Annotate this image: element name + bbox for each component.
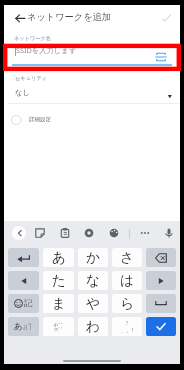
button[interactable]: は	[112, 271, 142, 290]
button[interactable]: 詳細設定	[8, 109, 100, 130]
button[interactable]: わ	[78, 317, 108, 336]
button[interactable]: Back	[11, 10, 28, 27]
staticText: ?	[126, 320, 128, 326]
button[interactable]: や	[78, 294, 108, 313]
button[interactable]: Collapse toolbar	[12, 226, 26, 240]
button[interactable]: さ	[112, 248, 142, 267]
staticText: わ	[86, 318, 100, 335]
staticText: や	[86, 295, 100, 312]
staticText: セキュリティ	[15, 75, 47, 82]
button[interactable]: right	[146, 271, 176, 290]
staticText: 記	[24, 298, 33, 309]
button[interactable]: た	[43, 271, 74, 290]
staticText: 大ﾞﾟ	[54, 327, 63, 331]
staticText: さ	[120, 249, 134, 266]
button[interactable]: ら	[112, 294, 142, 313]
button[interactable]: Stickers	[32, 225, 48, 241]
staticText: か	[86, 249, 100, 266]
button[interactable]: dakuten	[43, 317, 74, 336]
button[interactable]: More	[137, 225, 153, 241]
staticText: SSIDを入力します	[16, 45, 77, 55]
button[interactable]: あ	[43, 248, 74, 267]
staticText: あ	[52, 249, 66, 266]
staticText: ネットワークを追加	[27, 11, 111, 23]
button[interactable]: Settings	[81, 225, 97, 241]
staticText: a1	[23, 321, 33, 332]
staticText: は	[120, 272, 134, 289]
button[interactable]: enter	[146, 317, 176, 336]
button[interactable]: Save	[157, 9, 175, 27]
button[interactable]: Themes	[106, 225, 122, 241]
button[interactable]: punct	[112, 317, 142, 336]
button[interactable]: left	[8, 271, 39, 290]
button[interactable]: Clipboard	[57, 225, 73, 241]
staticText: 小ﾞﾟ	[53, 322, 64, 327]
staticText: 詳細設定	[29, 116, 51, 123]
button[interactable]: emoji	[8, 294, 39, 313]
button[interactable]: del	[146, 248, 176, 267]
staticText: ま	[52, 295, 66, 312]
staticText: 、。!	[121, 326, 133, 333]
staticText: ネットワーク名	[14, 35, 51, 42]
staticText: た	[52, 272, 66, 289]
button[interactable]: ret	[8, 248, 39, 267]
staticText: なし	[15, 88, 30, 97]
button[interactable]: ま	[43, 294, 74, 313]
button[interactable]: mode	[8, 317, 39, 336]
button[interactable]: Scan QR code	[153, 49, 169, 65]
button[interactable]: Voice input	[161, 225, 177, 241]
staticText: あ	[14, 321, 23, 332]
button[interactable]: な	[78, 271, 108, 290]
button[interactable]: か	[78, 248, 108, 267]
button[interactable]: space	[146, 294, 176, 313]
staticText: ら	[120, 295, 134, 312]
staticText: な	[86, 272, 100, 289]
